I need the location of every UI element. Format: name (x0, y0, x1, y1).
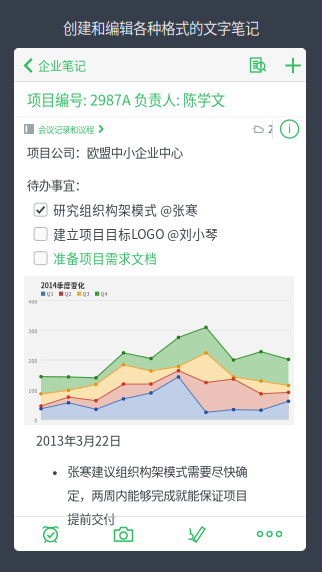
staticText: 待办事宜： (27, 176, 87, 194)
staticText: 研究组织构架模式 @张寒 (53, 200, 198, 218)
button[interactable]: Note info (281, 120, 299, 138)
staticText: Q4 (101, 290, 108, 297)
button[interactable]: More options (233, 517, 306, 551)
staticText: 提前交付 (67, 510, 115, 528)
staticText: Q1 (47, 290, 54, 297)
button[interactable]: 准备项目需求文档 (34, 250, 289, 267)
staticText: 定，两周内能够完成就能保证项目 (67, 486, 247, 504)
button[interactable]: 会议记录和议程 (24, 122, 104, 136)
staticText: Q3 (83, 290, 90, 297)
staticText: 200 (28, 357, 37, 364)
staticText: 100 (28, 387, 37, 394)
button[interactable]: Camera (87, 517, 160, 551)
staticText: 2014季度变化 (41, 280, 85, 290)
staticText: 建立项目目标LOGO @刘小琴 (53, 224, 218, 242)
staticText: 准备项目需求文档 (53, 249, 157, 267)
staticText: 创建和编辑各种格式的文字笔记 (63, 17, 259, 38)
staticText: Q2 (65, 290, 72, 297)
staticText: 300 (28, 328, 37, 335)
staticText: 企业笔记 (38, 57, 86, 74)
button[interactable]: Reminder (14, 517, 87, 551)
staticText: 会议记录和议程 (38, 123, 94, 135)
button[interactable]: Handwriting (160, 517, 233, 551)
staticText: 张寒建议组织构架模式需要尽快确 (67, 462, 247, 480)
button[interactable]: 企业笔记 (23, 56, 103, 75)
staticText: 2013年3月22日 (36, 431, 121, 449)
staticText: 0 (34, 417, 37, 424)
staticText: 400 (28, 298, 37, 305)
staticText: 项目公司：欧盟中小企业中心 (27, 143, 183, 161)
button[interactable]: New note (279, 56, 307, 75)
button[interactable]: 研究组织构架模式 @张寒 (34, 201, 289, 218)
staticText: 项目编号: 2987A 负责人: 陈学文 (27, 89, 225, 110)
staticText: 2 (268, 122, 274, 136)
staticText: i (288, 120, 291, 137)
button[interactable]: Search in note (244, 56, 272, 75)
button[interactable]: 建立项目目标LOGO @刘小琴 (34, 225, 289, 242)
